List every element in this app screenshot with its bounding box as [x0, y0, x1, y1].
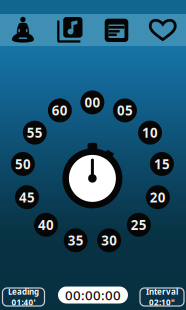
staticText: 00	[84, 93, 100, 111]
button[interactable]: 00:00:00	[58, 286, 128, 303]
staticText: 05	[117, 102, 133, 119]
staticText: Interval	[146, 286, 178, 297]
staticText: 60	[52, 102, 68, 119]
button[interactable]: Interval	[140, 288, 184, 306]
staticText: 10	[142, 124, 158, 141]
button[interactable]: Favourites	[139, 14, 186, 46]
button[interactable]: Meditate	[0, 14, 46, 46]
staticText: 30	[101, 231, 117, 249]
button[interactable]: Leading	[2, 288, 44, 306]
staticText: 35	[68, 231, 84, 249]
staticText: 25	[131, 216, 147, 234]
button[interactable]: Articles	[93, 14, 139, 46]
staticText: 15	[154, 155, 170, 173]
staticText: 40	[38, 216, 54, 234]
staticText: 45	[19, 188, 35, 206]
staticText: 20	[150, 188, 166, 206]
staticText: 02:10"	[149, 297, 175, 308]
staticText: 55	[27, 124, 43, 141]
staticText: Leading	[8, 286, 39, 297]
staticText: 01:40'	[11, 297, 35, 308]
staticText: 50	[15, 155, 31, 173]
staticText: 00:00:00	[65, 286, 121, 304]
button[interactable]: Music	[46, 14, 93, 46]
